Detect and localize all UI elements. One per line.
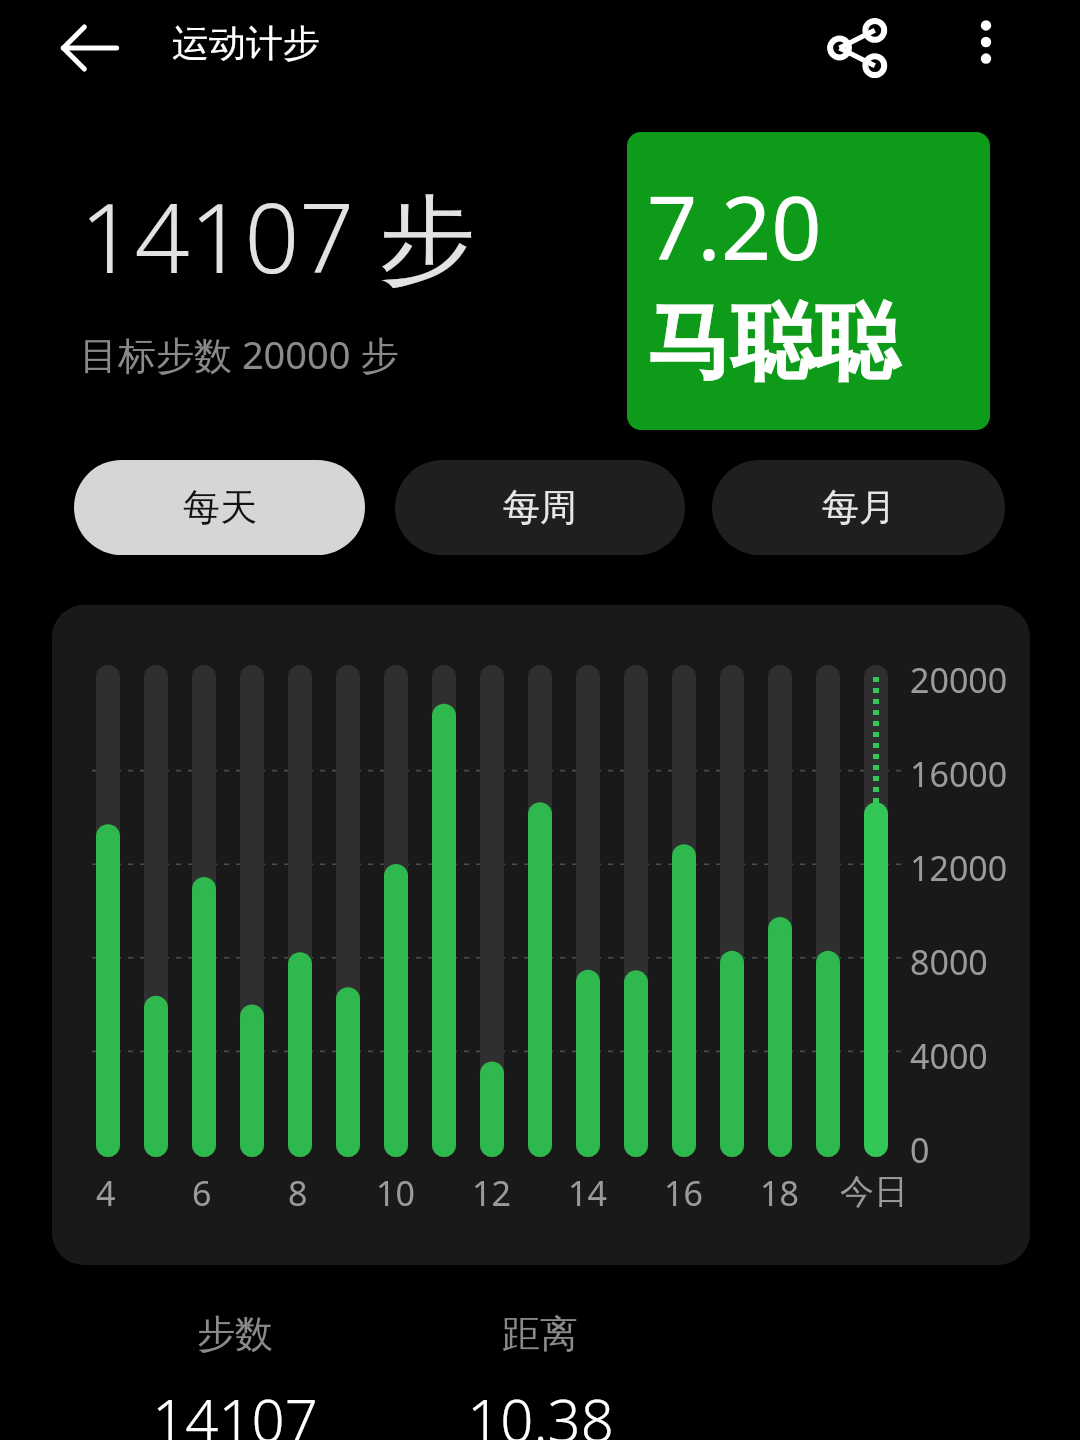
staticText: 4000 [910,1033,988,1079]
button[interactable]: 每天 [74,460,365,555]
button[interactable]: 距离 [435,1310,645,1440]
staticText: 步数 [197,1310,273,1358]
button[interactable]: 每月 [712,460,1005,555]
staticText: 10.38 [467,1380,614,1440]
staticText: 8000 [910,939,988,985]
staticText: 目标步数 20000 步 [80,328,399,380]
staticText: 16 [664,1170,703,1216]
staticText: 6 [192,1170,212,1216]
staticText: 18 [760,1170,799,1216]
staticText: 每月 [822,484,896,531]
staticText: 马聪聪 [647,290,899,396]
staticText: 0 [910,1127,930,1173]
button[interactable]: Share [816,6,900,90]
staticText: 7.20 [647,166,822,286]
button[interactable]: 步数 [130,1310,340,1440]
staticText: 14 [568,1170,607,1216]
staticText: 距离 [502,1310,578,1358]
staticText: 14107 步 [80,170,476,301]
staticText: 每天 [183,484,257,531]
staticText: 每周 [503,484,577,531]
staticText: 运动计步 [172,20,320,67]
button[interactable]: 7.20 [627,132,990,430]
staticText: 12 [472,1170,511,1216]
button[interactable]: More options [950,6,1022,78]
staticText: 16000 [910,751,1008,797]
staticText: 14107 [152,1380,318,1440]
staticText: 10 [376,1170,415,1216]
staticText: 8 [288,1170,308,1216]
staticText: 12000 [910,845,1008,891]
button[interactable]: Back [54,12,126,84]
staticText: 4 [96,1170,116,1216]
button[interactable]: 每周 [395,460,685,555]
staticText: 今日 [840,1170,908,1213]
staticText: 20000 [910,657,1008,703]
